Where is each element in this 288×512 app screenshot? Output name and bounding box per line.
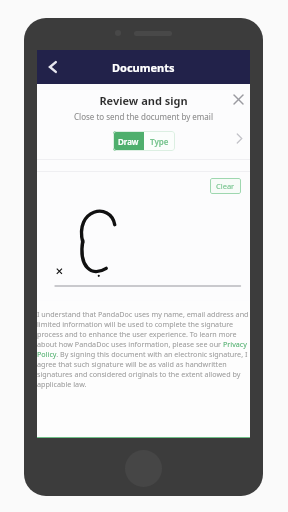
staticText: I understand that PandaDoc uses my name,… (37, 309, 250, 389)
staticText: Documents (112, 60, 175, 75)
staticText: Close to send the document by email (37, 111, 250, 122)
staticText: Review and sign (37, 93, 250, 108)
button[interactable]: Back (37, 50, 69, 84)
staticText: Clear (216, 181, 235, 191)
button[interactable]: Draw (113, 131, 144, 151)
staticText: Type (150, 136, 169, 147)
button[interactable]: Close (229, 90, 247, 108)
staticText: Draw (118, 136, 139, 147)
button[interactable]: Next (231, 130, 247, 146)
button[interactable]: Clear (210, 178, 241, 194)
button[interactable]: Type (144, 131, 175, 151)
